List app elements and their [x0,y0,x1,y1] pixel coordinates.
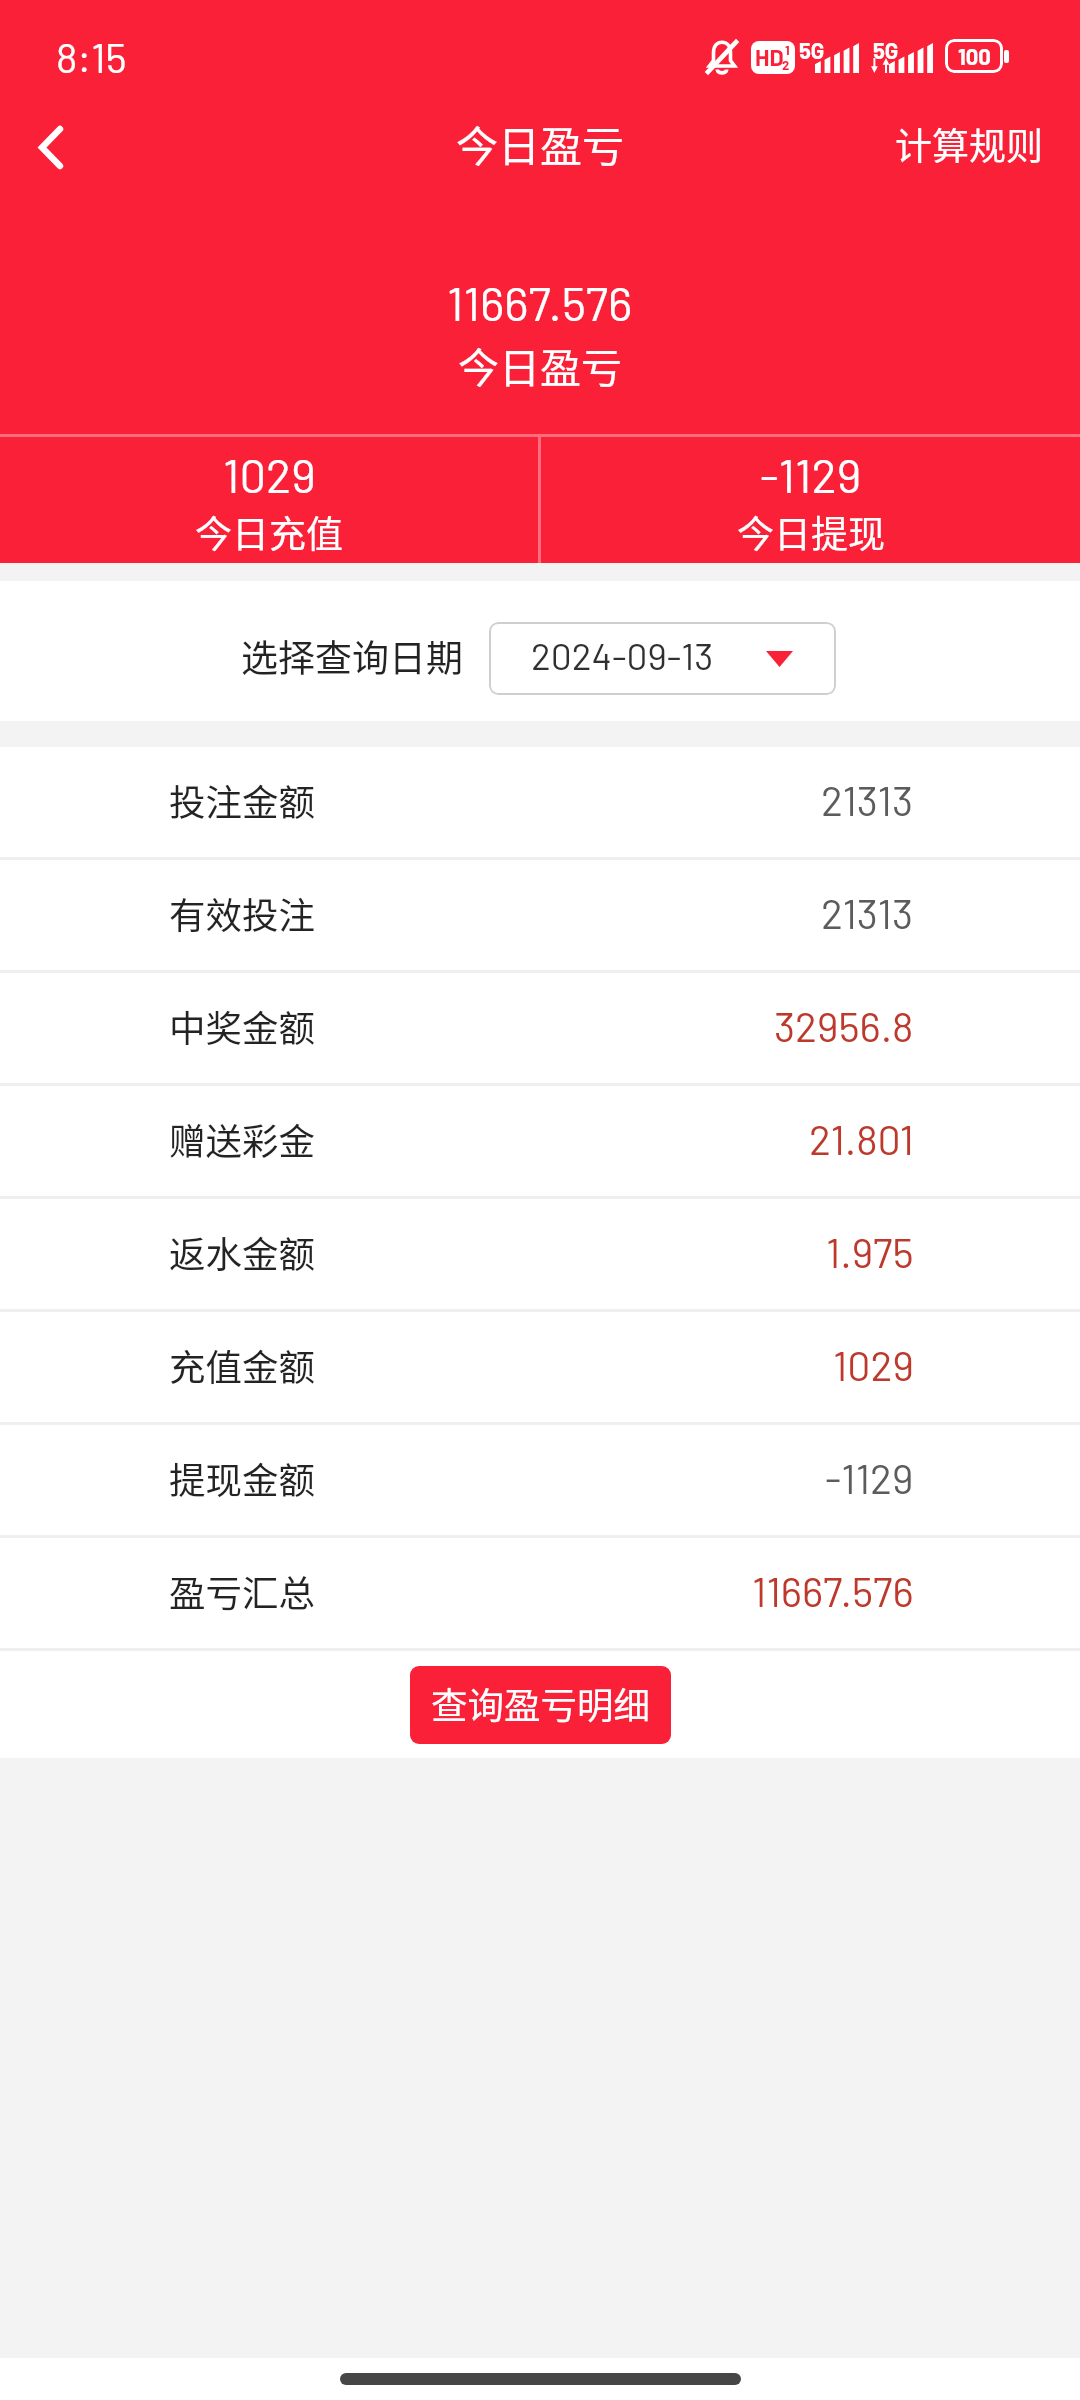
button[interactable]: 投注金额 [0,747,1080,857]
staticText: 今日充值 [195,505,343,559]
staticText: 11667.576 [752,1566,914,1615]
staticText: 21313 [821,888,914,937]
staticText: HD [755,43,784,71]
button[interactable]: -1129 [541,437,1080,563]
staticText: 1 [785,42,790,58]
staticText: 1.975 [826,1227,914,1276]
button[interactable]: 充值金额 [0,1312,1080,1422]
button[interactable]: 有效投注 [0,860,1080,970]
button[interactable]: 1029 [0,437,538,563]
staticText: 今日盈亏 [456,113,625,174]
staticText: 提现金额 [169,1452,315,1505]
staticText: 充值金额 [169,1339,315,1392]
staticText: 11667.576 [447,274,633,330]
button[interactable]: 提现金额 [0,1425,1080,1535]
staticText: 5G [799,37,825,63]
staticText: 2 [782,57,790,73]
staticText: -1129 [825,1453,914,1502]
staticText: 100 [958,43,991,69]
staticText: 中奖金额 [169,1000,315,1053]
button[interactable]: 中奖金额 [0,973,1080,1083]
staticText: 投注金额 [169,774,315,827]
staticText: 1029 [223,446,316,502]
staticText: 选择查询日期 [241,629,463,683]
staticText: 21.801 [809,1114,914,1163]
staticText: 32956.8 [774,1001,914,1050]
staticText: 有效投注 [169,887,315,940]
staticText: 21313 [821,775,914,824]
button[interactable]: 查询盈亏明细 [410,1666,671,1744]
button[interactable]: 赠送彩金 [0,1086,1080,1196]
button[interactable]: 计算规则 [854,94,1080,194]
staticText: 今日提现 [737,505,885,559]
staticText: 返水金额 [169,1226,315,1279]
staticText: 8:15 [56,32,127,81]
button[interactable]: 返水金额 [0,1199,1080,1309]
staticText: 查询盈亏明细 [431,1677,650,1730]
staticText: 计算规则 [895,117,1043,171]
button[interactable]: Back [0,94,102,194]
staticText: 2024-09-13 [531,633,714,677]
staticText: 赠送彩金 [169,1113,315,1166]
staticText: 5G [873,37,899,63]
staticText: 1029 [833,1340,914,1389]
staticText: -1129 [760,446,862,502]
button[interactable]: 盈亏汇总 [0,1538,1080,1648]
staticText: 今日盈亏 [458,335,622,394]
button[interactable]: 2024-09-13 [489,622,836,695]
staticText: 盈亏汇总 [169,1565,315,1618]
